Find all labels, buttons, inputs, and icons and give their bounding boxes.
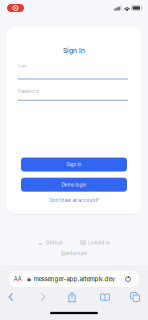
button[interactable]: Don't have an account? (21, 196, 127, 204)
staticText: Demo login (61, 182, 86, 188)
button[interactable]: GitHub (38, 239, 62, 246)
button[interactable]: Bookmarks (100, 292, 110, 301)
staticText: Password (18, 89, 39, 94)
staticText: Don't have an account? (49, 198, 98, 203)
staticText: Sign in (66, 162, 81, 167)
staticText: Sign In (63, 46, 85, 55)
staticText: GitHub (45, 239, 62, 246)
staticText: AA (14, 276, 22, 282)
button[interactable]: AA (9, 271, 139, 287)
button[interactable]: Sign in (21, 157, 127, 171)
button[interactable]: Forward (39, 291, 47, 302)
button[interactable]: Tabs (130, 292, 140, 302)
staticText: @artemplv (60, 250, 87, 256)
button[interactable]: Demo login (21, 178, 127, 192)
button[interactable]: Linked In (80, 239, 110, 246)
button[interactable]: Share (67, 291, 76, 302)
staticText: messenger-app.artemplv.dev (33, 275, 114, 283)
staticText: Linked In (88, 239, 110, 246)
button[interactable]: Back (7, 291, 15, 302)
staticText: Login (18, 64, 27, 68)
